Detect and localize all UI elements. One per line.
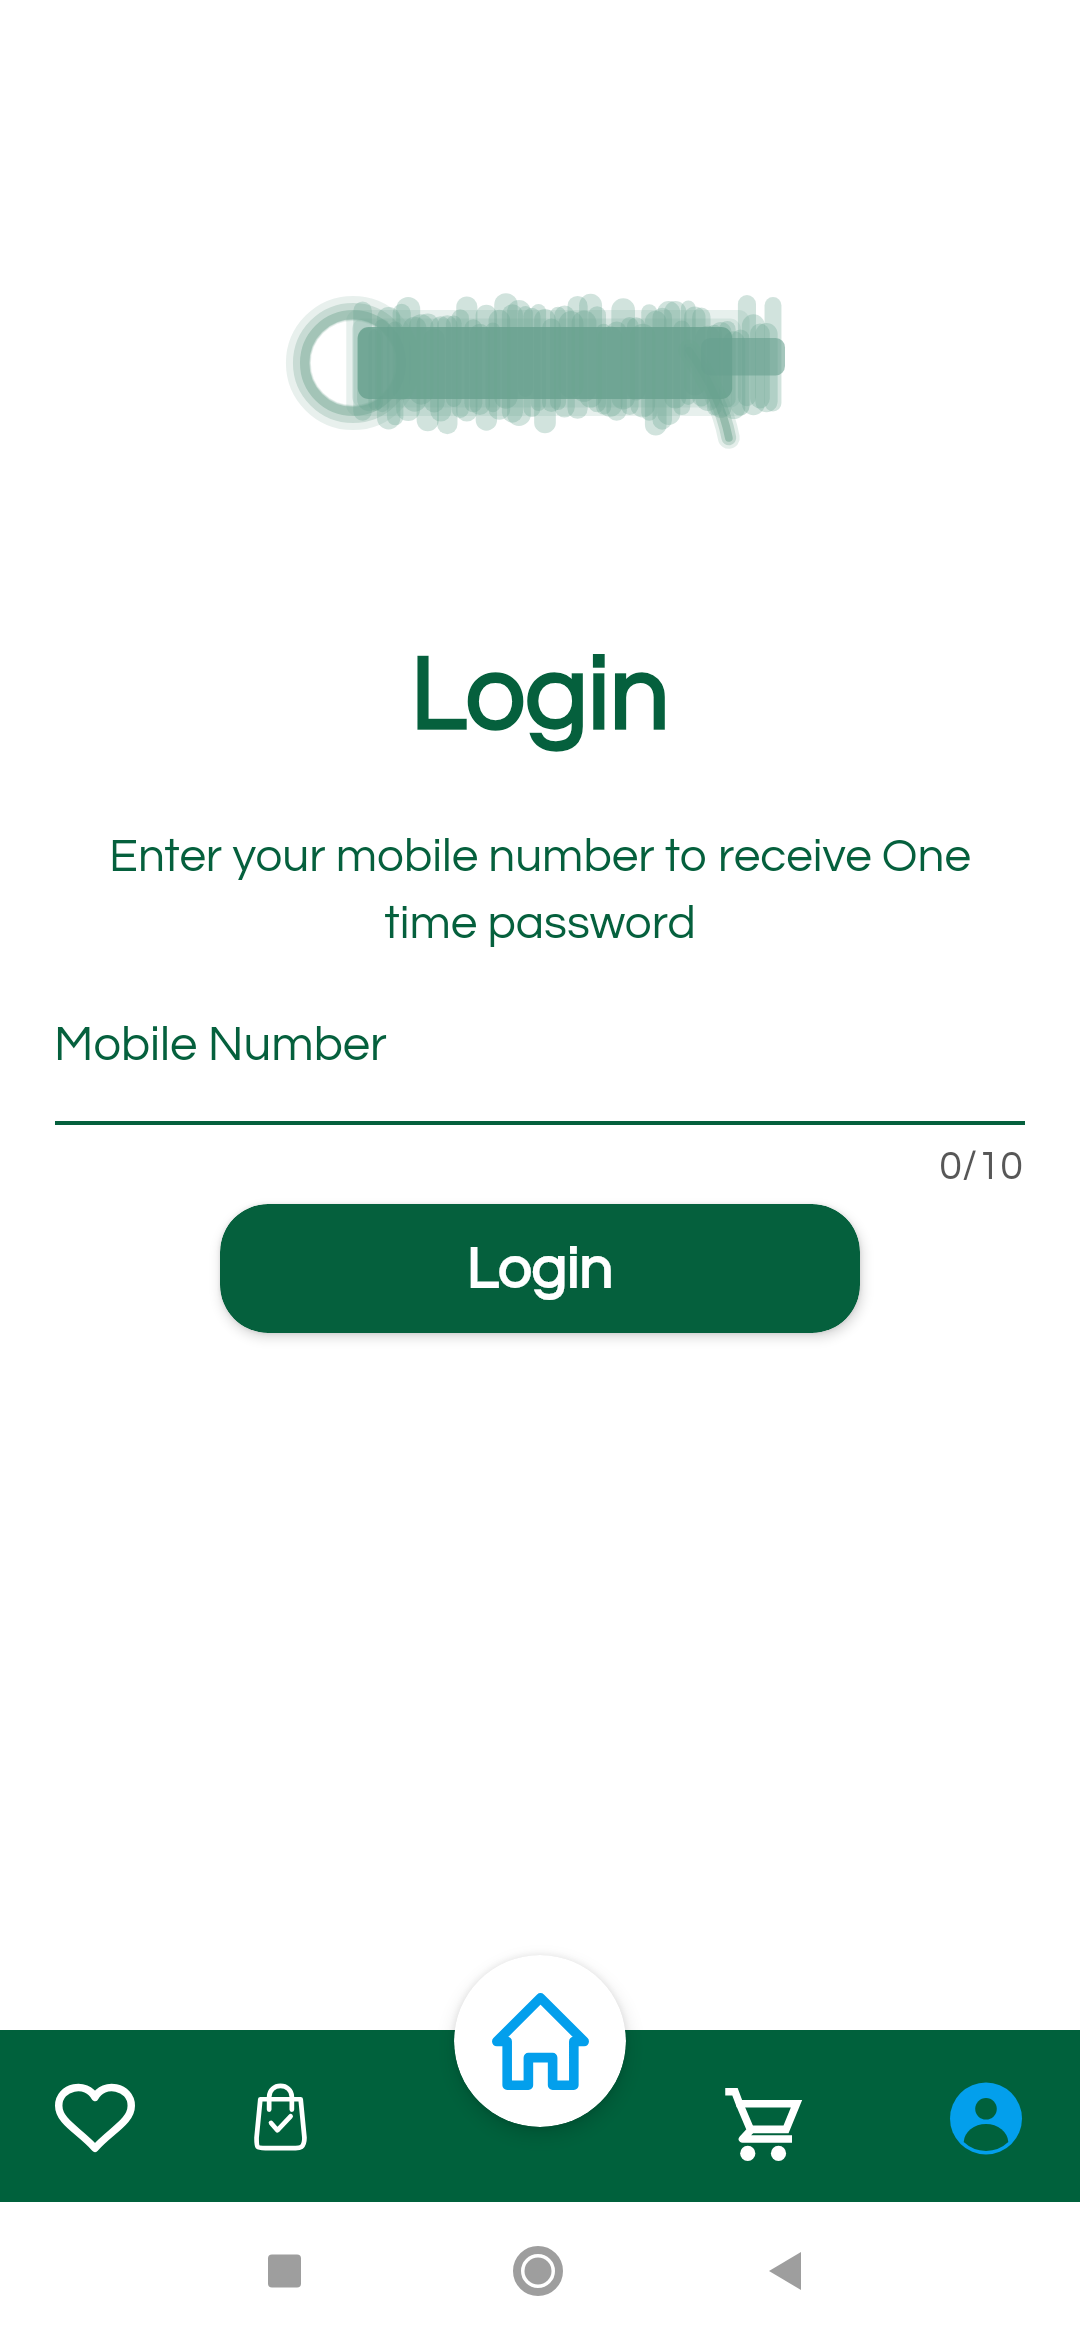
button[interactable]: Favourites [34, 2060, 156, 2173]
staticText: Login [0, 641, 1080, 750]
staticText: Enter your mobile number to receive One … [60, 832, 1020, 948]
button[interactable]: Cart [702, 2062, 819, 2184]
staticText: Login [467, 1238, 614, 1299]
staticText: Mobile Number [54, 1020, 387, 1070]
button[interactable]: Account [929, 2059, 1043, 2178]
button[interactable]: Home [454, 1955, 626, 2127]
staticText: 0/10 [0, 1145, 1023, 1188]
button[interactable]: Orders [228, 2059, 333, 2175]
button[interactable]: Login [220, 1204, 860, 1333]
